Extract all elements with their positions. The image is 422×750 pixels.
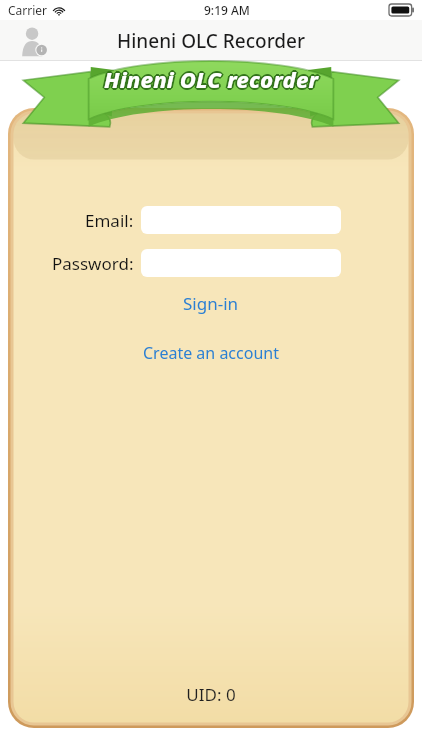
staticText: Hineni OLC recorder [102,64,317,94]
button[interactable]: Create an account [133,339,289,367]
staticText: Hineni OLC recorder [106,64,321,94]
staticText: 9:19 AM [204,2,250,18]
staticText: Email: [85,209,134,232]
staticText: Hineni OLC recorder [105,63,320,93]
staticText: Hineni OLC recorder [104,64,319,94]
staticText: Create an account [143,342,279,364]
button[interactable]: Account info [14,22,54,60]
staticText: Hineni OLC recorder [104,62,319,92]
staticText: Hineni OLC Recorder [117,28,306,54]
staticText: Hineni OLC recorder [103,65,318,95]
button[interactable] [141,249,341,277]
staticText: Hineni OLC recorder [105,65,320,95]
staticText: Password: [52,252,134,275]
staticText: Hineni OLC recorder [104,66,319,96]
staticText: Carrier [8,2,48,18]
staticText: Hineni OLC recorder [103,63,318,93]
staticText: UID: 0 [8,683,414,706]
button[interactable] [141,206,341,234]
staticText: Sign-in [183,292,239,315]
button[interactable]: Sign-in [173,289,249,318]
